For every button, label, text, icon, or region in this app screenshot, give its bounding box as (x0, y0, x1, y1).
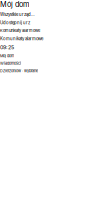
staticText: Dzierżoniów · wybrane (0, 69, 38, 73)
staticText: Komunikaty alarmowe (0, 36, 43, 41)
staticText: Komunikaty alarmowe (0, 28, 40, 33)
staticText: Wszystkie urząd… (0, 12, 35, 17)
staticText: Wiadomości (0, 61, 21, 66)
staticText: Mój dom (0, 54, 14, 58)
staticText: Udostępnij urz (0, 20, 30, 25)
staticText: Mój dom (0, 0, 29, 9)
staticText: 09:25 (0, 44, 14, 51)
